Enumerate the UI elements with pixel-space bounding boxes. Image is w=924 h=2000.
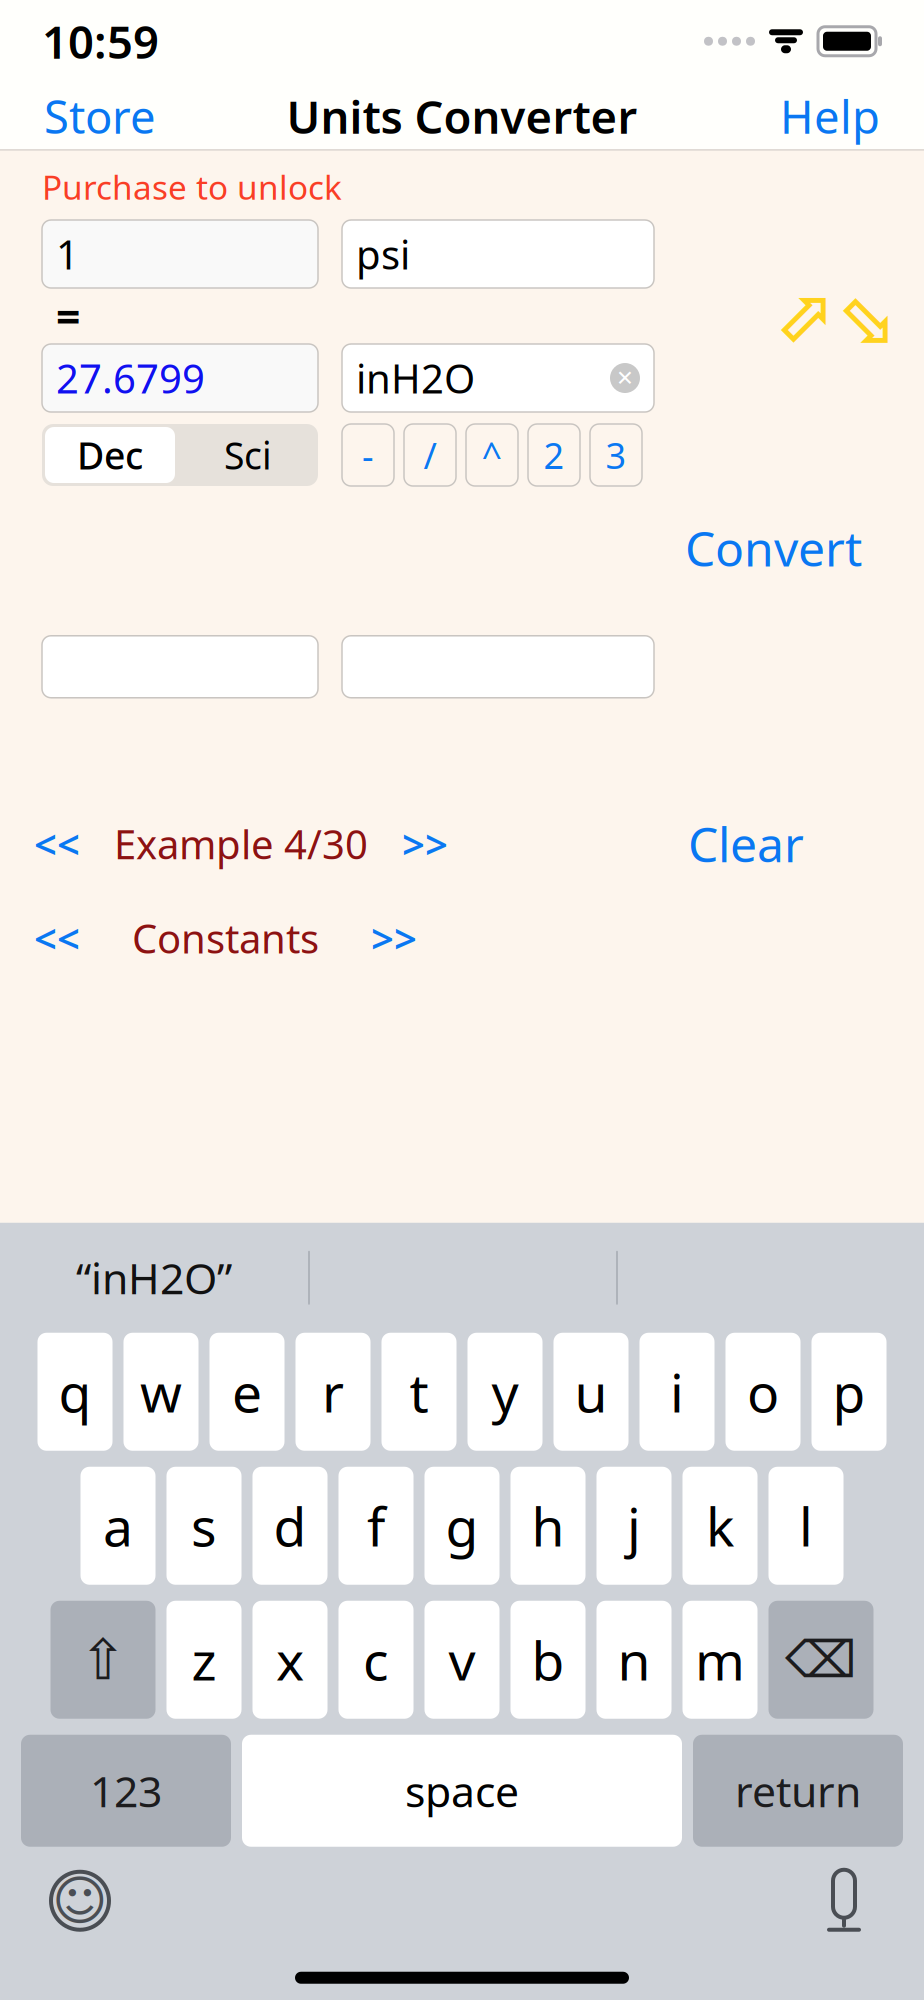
staticText: space: [405, 1762, 519, 1819]
staticText: w: [140, 1356, 182, 1427]
button[interactable]: Next constants: [363, 911, 425, 965]
button[interactable]: r: [295, 1333, 370, 1451]
staticText: s: [191, 1490, 217, 1561]
staticText: x: [276, 1624, 304, 1695]
button[interactable]: Shift: [50, 1601, 155, 1719]
staticText: d: [273, 1490, 306, 1561]
staticText: inH2O: [356, 351, 475, 405]
button[interactable]: l: [768, 1467, 843, 1585]
button[interactable]: c: [338, 1601, 413, 1719]
staticText: a: [103, 1490, 133, 1561]
button[interactable]: v: [424, 1601, 499, 1719]
staticText: h: [531, 1490, 564, 1561]
staticText: l: [799, 1490, 813, 1561]
staticText: r: [322, 1356, 344, 1427]
button[interactable]: k: [682, 1467, 757, 1585]
staticText: 1: [56, 227, 79, 281]
staticText: >>: [402, 817, 448, 870]
button[interactable]: return: [693, 1735, 903, 1847]
staticText: b: [531, 1624, 564, 1695]
button[interactable]: psi: [342, 220, 654, 288]
staticText: m: [695, 1624, 745, 1695]
staticText: z: [191, 1624, 216, 1695]
button[interactable]: d: [252, 1467, 327, 1585]
staticText: n: [617, 1624, 650, 1695]
staticText: g: [445, 1490, 478, 1561]
staticText: Units Converter: [286, 86, 637, 146]
staticText: ^: [481, 431, 502, 479]
button[interactable]: 1: [42, 220, 318, 288]
button[interactable]: x: [252, 1601, 327, 1719]
staticText: Dec: [77, 430, 143, 480]
button[interactable]: 123: [21, 1735, 231, 1847]
staticText: “inH2O”: [76, 1249, 232, 1306]
button[interactable]: z: [166, 1601, 241, 1719]
button[interactable]: b: [510, 1601, 585, 1719]
button[interactable]: /: [404, 424, 456, 486]
button[interactable]: j: [596, 1467, 671, 1585]
button[interactable]: p: [811, 1333, 886, 1451]
button[interactable]: a: [80, 1467, 155, 1585]
staticText: p: [832, 1356, 865, 1427]
staticText: i: [670, 1356, 684, 1427]
button[interactable]: m: [682, 1601, 757, 1719]
button[interactable]: n: [596, 1601, 671, 1719]
button[interactable]: o: [725, 1333, 800, 1451]
button[interactable]: [342, 636, 654, 698]
button[interactable]: f: [338, 1467, 413, 1585]
staticText: 123: [90, 1762, 162, 1819]
button[interactable]: e: [209, 1333, 284, 1451]
button[interactable]: Emoji keyboard: [40, 1861, 120, 1941]
staticText: u: [574, 1356, 607, 1427]
staticText: <<: [34, 911, 80, 965]
staticText: Help: [780, 86, 880, 146]
button[interactable]: 2: [528, 424, 580, 486]
button[interactable]: inH2O: [342, 344, 654, 412]
button[interactable]: u: [553, 1333, 628, 1451]
button[interactable]: Previous constants: [26, 911, 88, 965]
button[interactable]: Sci: [178, 424, 318, 486]
button[interactable]: w: [123, 1333, 198, 1451]
button[interactable]: Clear: [676, 806, 816, 881]
button[interactable]: i: [639, 1333, 714, 1451]
staticText: 3: [605, 431, 626, 479]
staticText: k: [706, 1490, 734, 1561]
button[interactable]: h: [510, 1467, 585, 1585]
button[interactable]: g: [424, 1467, 499, 1585]
button[interactable]: y: [467, 1333, 542, 1451]
button[interactable]: [42, 636, 318, 698]
button[interactable]: -: [342, 424, 394, 486]
button[interactable]: Store: [34, 76, 166, 156]
button[interactable]: ^: [466, 424, 518, 486]
button[interactable]: Dictation: [804, 1861, 884, 1941]
button[interactable]: Previous example: [26, 817, 88, 870]
staticText: >>: [371, 911, 417, 965]
button[interactable]: t: [381, 1333, 456, 1451]
button[interactable]: Convert: [673, 508, 874, 588]
staticText: Example 4/30: [114, 817, 368, 870]
button[interactable]: Help: [770, 76, 890, 156]
staticText: ⌫: [785, 1631, 857, 1688]
staticText: o: [747, 1356, 779, 1427]
staticText: 27.6799: [56, 351, 205, 405]
staticText: ⬀: [772, 275, 832, 357]
button[interactable]: Delete: [768, 1601, 873, 1719]
staticText: 10:59: [42, 11, 159, 71]
staticText: <<: [34, 817, 80, 870]
button[interactable]: Dec: [42, 424, 178, 486]
staticText: c: [363, 1624, 389, 1695]
button[interactable]: Next example: [394, 817, 456, 870]
button[interactable]: space: [242, 1735, 682, 1847]
staticText: psi: [356, 227, 410, 281]
staticText: Clear: [688, 812, 804, 875]
button[interactable]: 27.6799: [42, 344, 318, 412]
staticText: q: [58, 1356, 91, 1427]
button[interactable]: Swap units: [774, 287, 892, 345]
button[interactable]: s: [166, 1467, 241, 1585]
staticText: Sci: [224, 430, 272, 480]
button[interactable]: q: [37, 1333, 112, 1451]
staticText: e: [232, 1356, 262, 1427]
staticText: ✕: [616, 366, 634, 390]
button[interactable]: 3: [590, 424, 642, 486]
